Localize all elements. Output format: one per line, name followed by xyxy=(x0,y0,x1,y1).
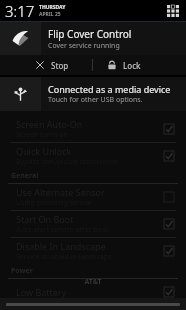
staticText: Connected as a media device xyxy=(48,83,171,95)
button[interactable]: Connected as a media device xyxy=(0,77,186,111)
staticText: AT&T xyxy=(0,277,186,287)
staticText: APRIL 25 xyxy=(39,11,61,18)
staticText: THURSDAY xyxy=(39,4,66,11)
staticText: 3:17 xyxy=(5,1,35,21)
button[interactable]: Flip Cover Control xyxy=(0,22,186,55)
staticText: Disable In Landscape xyxy=(16,240,106,252)
button[interactable]: Lock xyxy=(93,55,186,75)
staticText: Cover service running xyxy=(48,41,120,51)
staticText: Touch for other USB options. xyxy=(48,95,143,105)
button[interactable]: Stop xyxy=(0,55,92,75)
staticText: Use Alternate Sensor xyxy=(16,186,105,198)
staticText: Flip Cover Control xyxy=(48,27,132,41)
staticText: Start On Boot xyxy=(16,213,74,225)
staticText: Lock xyxy=(123,60,141,71)
staticText: Quick Unlock xyxy=(16,145,72,157)
staticText: Power xyxy=(11,266,33,276)
staticText: Low Battery xyxy=(16,286,67,298)
button[interactable]: Quick settings xyxy=(165,3,180,18)
staticText: Screen Auto-On xyxy=(16,118,83,130)
staticText: General xyxy=(11,171,39,181)
staticText: Stop xyxy=(51,60,69,71)
